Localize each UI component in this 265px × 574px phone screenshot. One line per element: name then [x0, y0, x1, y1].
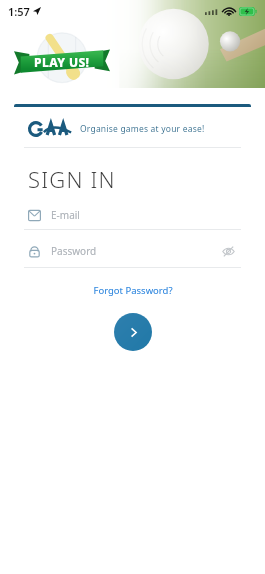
staticText: 1:57 — [8, 4, 30, 19]
staticText: E-mail — [51, 208, 80, 222]
staticText: SIGN IN — [28, 164, 116, 194]
staticText: Password — [51, 244, 97, 258]
button[interactable]: Password — [24, 242, 241, 268]
button[interactable]: E-mail — [24, 208, 241, 230]
button[interactable]: Show password — [219, 242, 237, 260]
staticText: PLAY US! — [34, 54, 90, 70]
button[interactable]: Forgot Password? — [83, 280, 183, 301]
staticText: Organise games at your ease! — [80, 123, 205, 135]
button[interactable]: Sign in — [114, 313, 152, 351]
